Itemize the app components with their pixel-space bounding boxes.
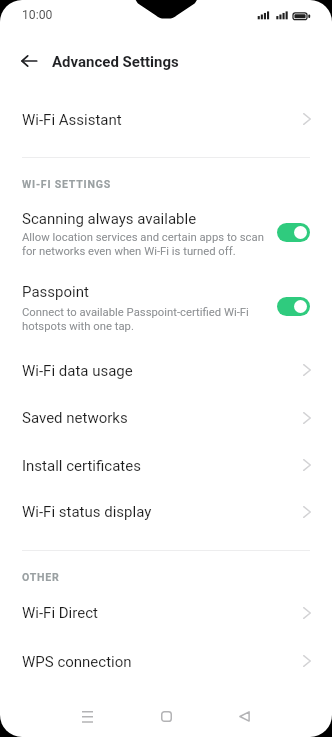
- button[interactable]: [0, 275, 332, 337]
- staticText: Wi-Fi Direct: [22, 604, 98, 622]
- staticText: 10:00: [22, 8, 53, 22]
- staticText: Passpoint: [22, 283, 89, 301]
- staticText: Wi-Fi status display: [22, 503, 152, 521]
- staticText: WI-FI SETTINGS: [22, 178, 112, 190]
- button[interactable]: Wi-Fi status display: [0, 488, 332, 536]
- staticText: WPS connection: [22, 653, 132, 671]
- staticText: Advanced Settings: [52, 53, 179, 71]
- button[interactable]: [0, 202, 332, 264]
- button[interactable]: Toggle switch, on: [277, 297, 310, 316]
- button[interactable]: Navigate back: [13, 46, 45, 76]
- button[interactable]: Install certificates: [0, 442, 332, 490]
- staticText: Wi-Fi data usage: [22, 362, 133, 380]
- button[interactable]: Toggle switch, on: [277, 223, 310, 242]
- staticText: Scanning always available: [22, 210, 197, 228]
- button[interactable]: Wi-Fi Direct: [0, 589, 332, 637]
- button[interactable]: Recent apps: [69, 698, 105, 734]
- staticText: Allow location services and certain apps…: [22, 231, 272, 258]
- button[interactable]: Saved networks: [0, 394, 332, 442]
- staticText: Install certificates: [22, 457, 141, 475]
- staticText: Wi-Fi Assistant: [22, 111, 122, 129]
- button[interactable]: Wi-Fi Assistant: [0, 96, 332, 144]
- staticText: Saved networks: [22, 409, 128, 427]
- staticText: OTHER: [22, 571, 60, 583]
- button[interactable]: WPS connection: [0, 638, 332, 686]
- button[interactable]: Back: [226, 698, 262, 734]
- staticText: Connect to available Passpoint-certified…: [22, 306, 272, 333]
- button[interactable]: Home: [148, 698, 184, 734]
- button[interactable]: Wi-Fi data usage: [0, 347, 332, 395]
